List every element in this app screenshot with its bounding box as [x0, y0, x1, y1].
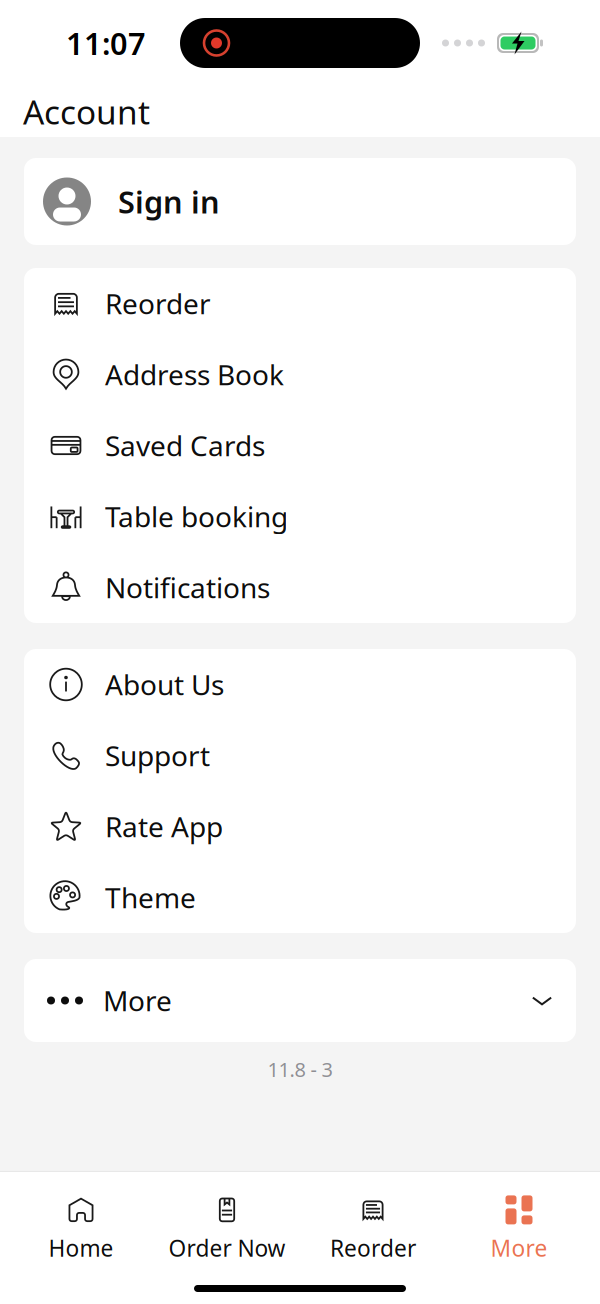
button[interactable]: Table booking: [24, 481, 576, 552]
button[interactable]: Reorder: [24, 268, 576, 339]
button[interactable]: Sign in: [24, 158, 576, 245]
staticText: 11:07: [66, 23, 146, 63]
staticText: Reorder: [105, 285, 211, 322]
staticText: Rate App: [105, 808, 223, 845]
staticText: About Us: [105, 666, 224, 703]
staticText: Account: [23, 89, 150, 134]
button[interactable]: Support: [24, 720, 576, 791]
staticText: Saved Cards: [105, 427, 265, 464]
staticText: Support: [105, 737, 210, 774]
staticText: Home: [48, 1233, 113, 1263]
button[interactable]: Reorder: [300, 1195, 446, 1263]
button[interactable]: Notifications: [24, 552, 576, 623]
button[interactable]: Saved Cards: [24, 410, 576, 481]
staticText: More: [103, 982, 172, 1019]
staticText: Order Now: [168, 1233, 285, 1263]
button[interactable]: Rate App: [24, 791, 576, 862]
button[interactable]: Home: [8, 1195, 154, 1263]
button[interactable]: More: [24, 959, 576, 1042]
staticText: 11.8 - 3: [267, 1056, 332, 1083]
staticText: Sign in: [118, 181, 220, 222]
button[interactable]: Address Book: [24, 339, 576, 410]
staticText: Reorder: [330, 1233, 416, 1263]
staticText: Notifications: [105, 569, 270, 606]
button[interactable]: More: [446, 1195, 592, 1263]
staticText: Table booking: [105, 498, 288, 535]
staticText: Theme: [105, 879, 196, 916]
button[interactable]: Theme: [24, 862, 576, 933]
staticText: Address Book: [105, 356, 284, 393]
button[interactable]: Order Now: [154, 1195, 300, 1263]
button[interactable]: About Us: [24, 649, 576, 720]
staticText: More: [490, 1233, 547, 1263]
